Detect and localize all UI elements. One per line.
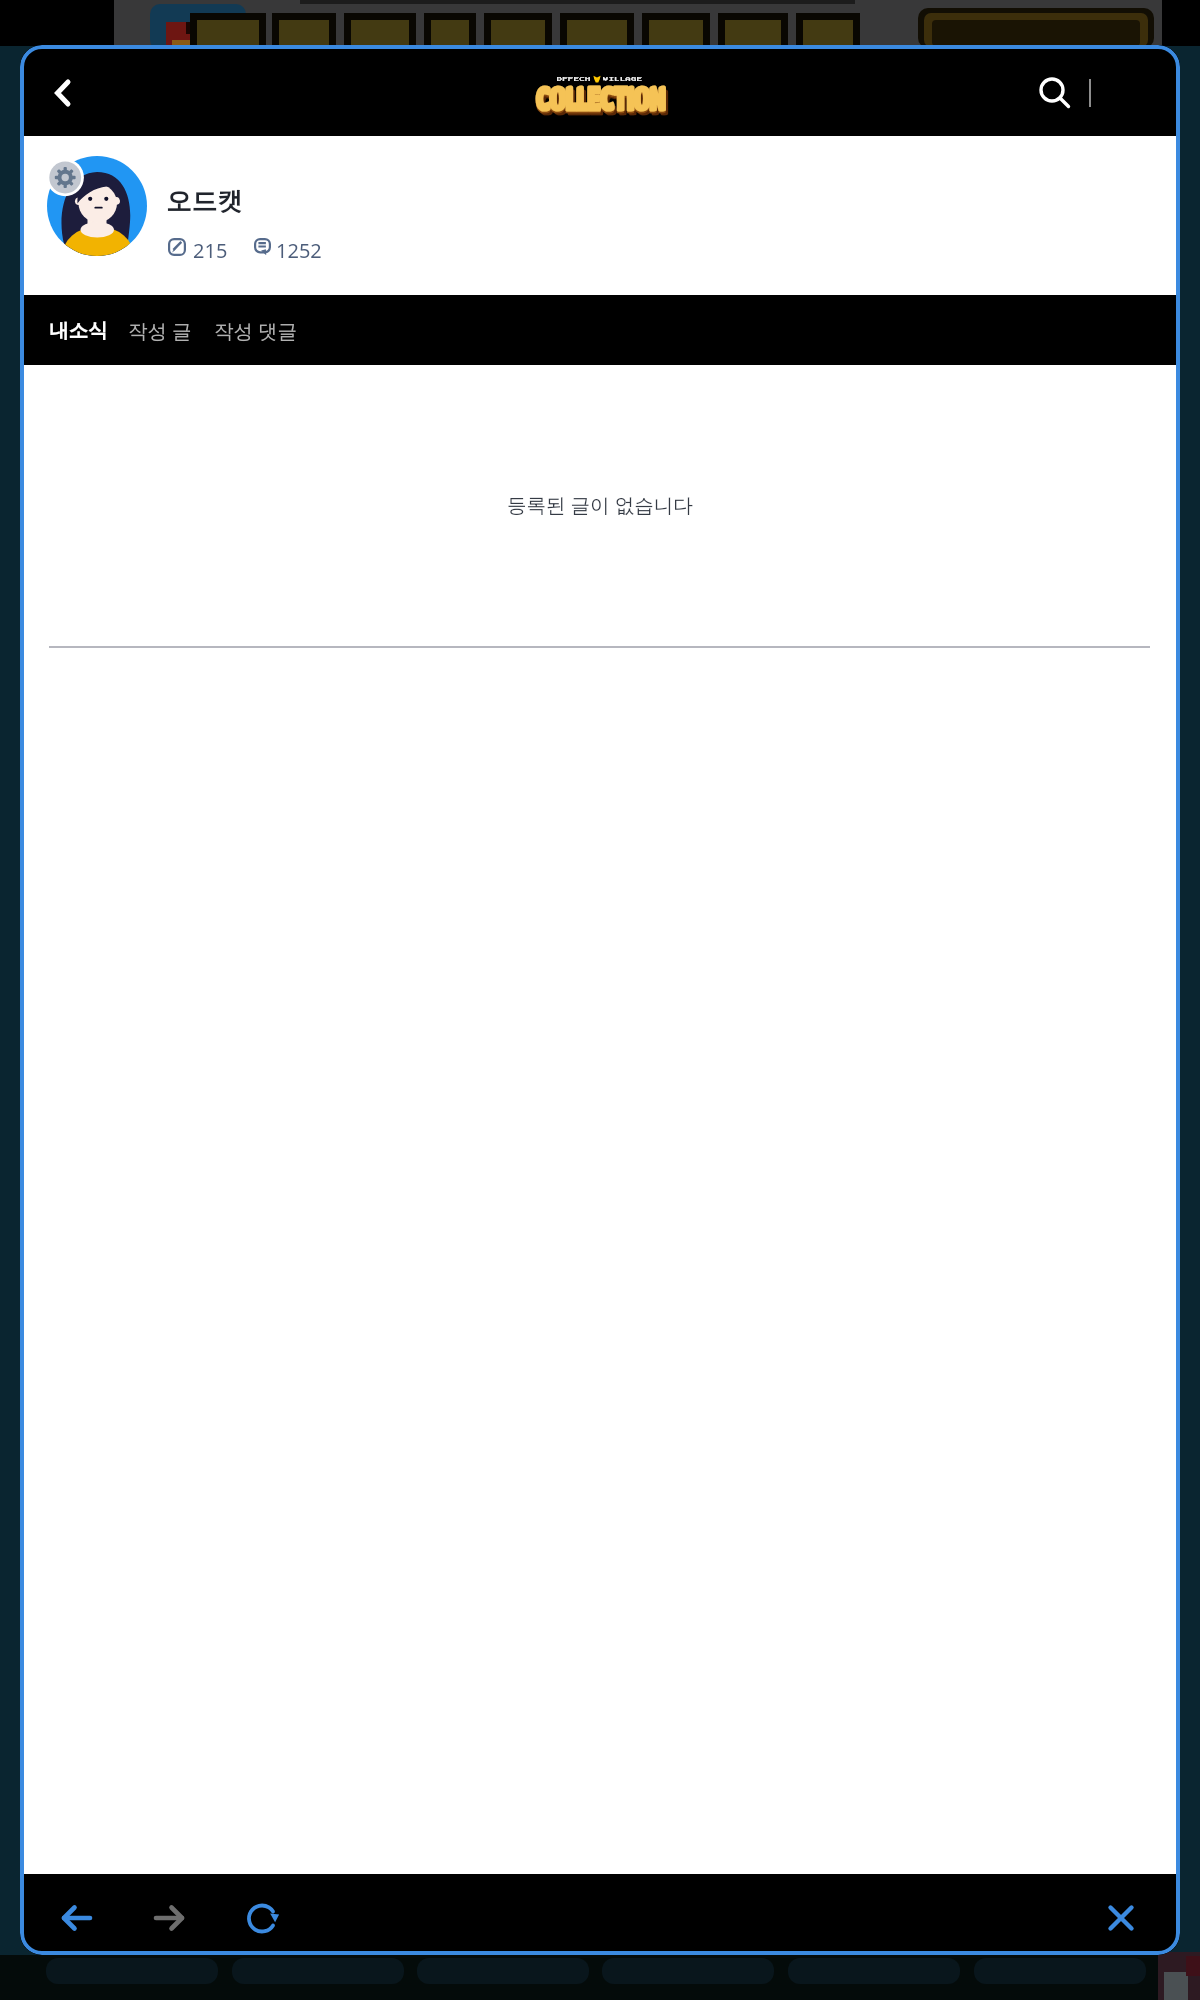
button[interactable]: Close [1086, 1883, 1156, 1953]
staticText: 1252 [276, 237, 322, 264]
staticText: COLLECTION [535, 79, 665, 118]
button[interactable]: 내소식 [41, 306, 116, 355]
button[interactable]: 작성 댓글 [206, 305, 306, 356]
button[interactable]: 작성 글 [120, 305, 200, 356]
staticText: COLLECTION [535, 78, 665, 117]
staticText: COLLECTION [538, 81, 667, 120]
staticText: 등록된 글이 없습니다 [507, 491, 693, 518]
button[interactable]: Refresh [227, 1883, 297, 1953]
staticText: 작성 댓글 [214, 317, 298, 344]
staticText: 215 [193, 237, 228, 264]
staticText: 내소식 [49, 318, 108, 343]
staticText: DFFECH [557, 77, 591, 82]
button[interactable]: Back [34, 64, 92, 122]
staticText: 오드캣 [166, 185, 243, 217]
button[interactable]: Forward [134, 1883, 204, 1953]
staticText: 작성 글 [128, 317, 192, 344]
button[interactable]: Search [1026, 64, 1084, 122]
button[interactable]: Back [42, 1883, 112, 1953]
staticText: VILLAGE [603, 77, 643, 82]
